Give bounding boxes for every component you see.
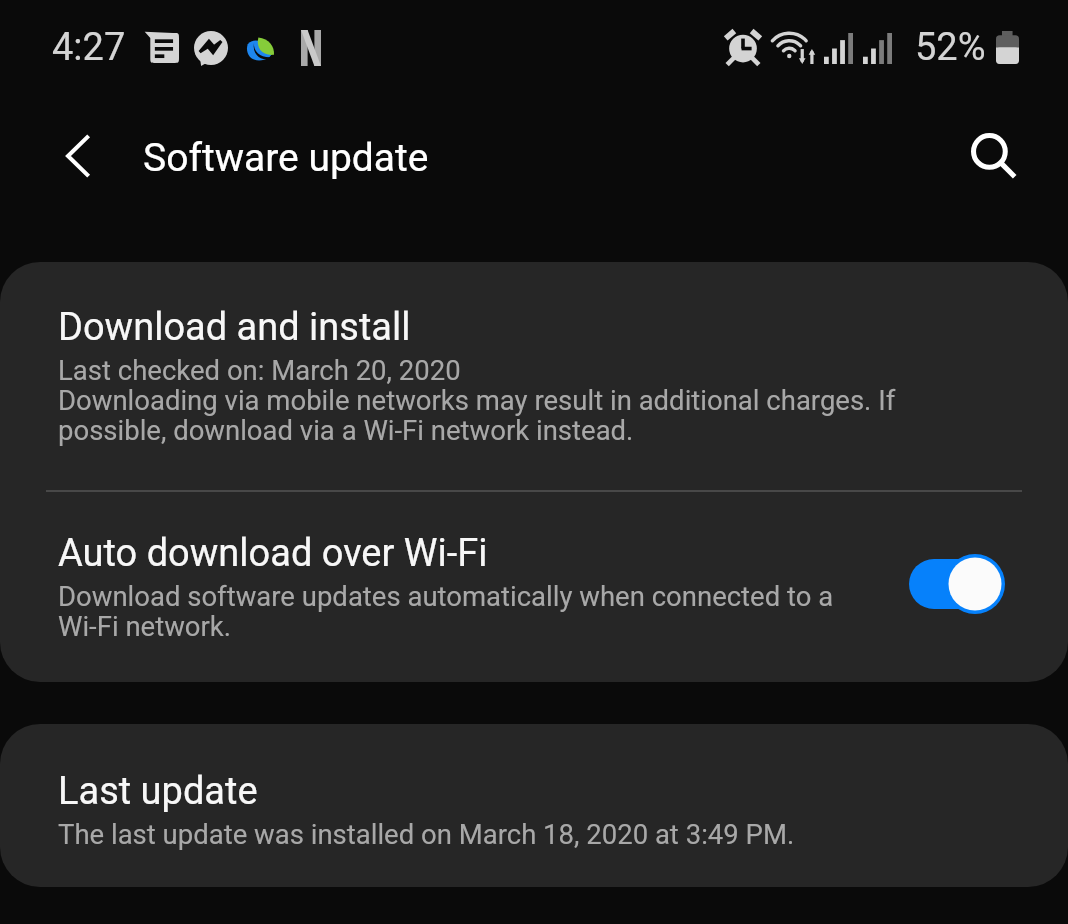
staticText: Auto download over Wi-Fi bbox=[58, 531, 488, 575]
staticText: Software update bbox=[143, 135, 429, 181]
button[interactable]: Search bbox=[958, 120, 1030, 192]
staticText: 4:27 bbox=[52, 25, 126, 70]
staticText: Download software updates automatically … bbox=[58, 582, 848, 642]
button[interactable]: Auto download over Wi-Fi bbox=[903, 552, 1011, 616]
button[interactable]: Last update bbox=[0, 724, 1068, 887]
button[interactable]: Navigate up bbox=[42, 118, 118, 194]
staticText: The last update was installed on March 1… bbox=[58, 820, 795, 850]
button[interactable]: Download and install bbox=[0, 262, 1068, 490]
button[interactable]: Auto download over Wi-Fi bbox=[0, 492, 1068, 682]
staticText: Last checked on: March 20, 2020 bbox=[58, 356, 461, 386]
staticText: Last update bbox=[58, 769, 258, 813]
staticText: Download and install bbox=[58, 305, 411, 349]
staticText: Downloading via mobile networks may resu… bbox=[58, 386, 908, 446]
staticText: 52% bbox=[915, 25, 986, 70]
